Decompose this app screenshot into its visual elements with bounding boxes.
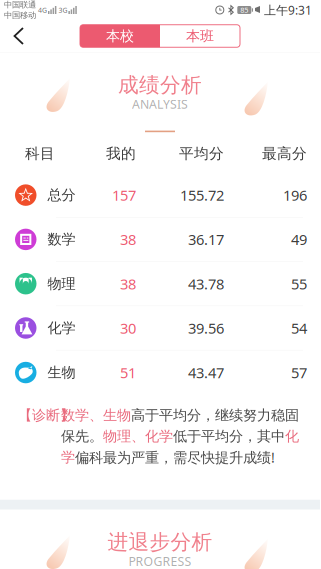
staticText: 平均分 [179,144,224,163]
staticText: 38 [120,229,136,249]
staticText: PROGRESS [128,553,191,569]
staticText: 54 [291,318,307,338]
staticText: 本校 [106,27,134,45]
staticText: 进退步分析 [107,529,212,555]
staticText: 偏科最为严重，需尽快提升成绩! [75,448,275,467]
staticText: 157 [112,185,136,205]
staticText: 数学 [47,230,75,248]
button[interactable]: 生物 [0,350,320,395]
staticText: 38 [120,274,136,294]
staticText: 55 [291,274,307,294]
staticText: 本班 [186,27,214,45]
staticText: 4G [38,5,47,15]
staticText: 学 [61,448,75,466]
staticText: 43.47 [188,363,224,383]
staticText: 最高分 [262,144,307,163]
staticText: 化学 [47,319,75,337]
button[interactable]: 总分 [0,173,320,217]
button[interactable]: 物理 [0,262,320,306]
staticText: 我的 [106,144,136,163]
staticText: 57 [291,363,307,383]
staticText: ANALYSIS [132,96,188,112]
staticText: 85 [240,5,248,15]
staticText: 【诊断】 [18,406,74,424]
button[interactable]: 数学 [0,217,320,261]
staticText: 中国移动 [4,10,36,20]
button[interactable]: 本校 [80,25,160,47]
staticText: 43.78 [188,274,224,294]
staticText: 化 [285,427,299,445]
staticText: 数学、生物 [61,406,131,424]
button[interactable]: 返回 [0,21,40,51]
staticText: 物理、化学 [103,427,173,445]
staticText: 生物 [47,364,75,381]
staticText: 36.17 [188,229,224,249]
staticText: 196 [283,185,307,205]
staticText: 3G [58,5,67,15]
staticText: 物理 [47,275,75,293]
staticText: 成绩分析 [118,72,202,98]
staticText: 高于平均分，继续努力稳固 [131,406,299,424]
staticText: 39.56 [188,318,224,338]
staticText: 155.72 [180,185,224,205]
staticText: 49 [291,229,307,249]
staticText: 51 [120,363,136,383]
staticText: 中国联通 [4,0,36,10]
button[interactable]: 本班 [160,25,240,47]
staticText: 30 [120,318,136,338]
staticText: 低于平均分，其中 [173,427,285,445]
button[interactable]: 化学 [0,306,320,350]
staticText: 上午9:31 [264,2,312,18]
staticText: 总分 [47,186,75,204]
staticText: 科目 [25,144,55,163]
staticText: 保先。 [61,427,103,445]
